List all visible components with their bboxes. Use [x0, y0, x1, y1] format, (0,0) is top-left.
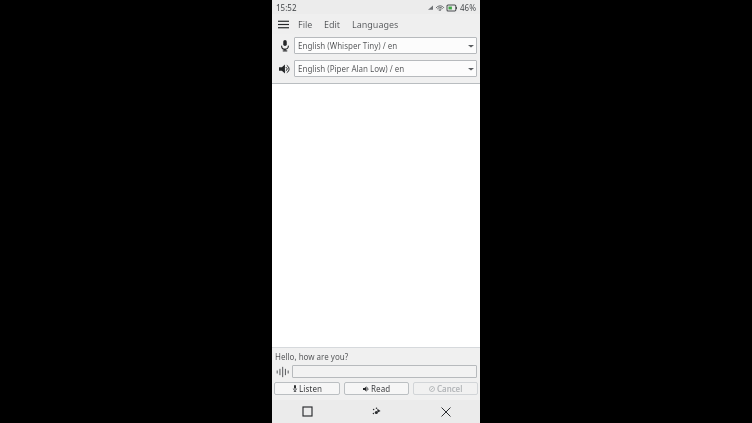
staticText: File [298, 18, 313, 30]
button[interactable]: Edit [320, 16, 345, 32]
button[interactable]: English (Piper Alan Low) / en [294, 60, 477, 77]
button[interactable] [292, 365, 477, 378]
staticText: 15:52 [276, 2, 297, 13]
staticText: Edit [324, 18, 341, 30]
button[interactable]: Recent apps [272, 400, 342, 423]
button[interactable]: Menu [272, 14, 294, 34]
staticText: English (Whisper Tiny) / en [298, 40, 468, 51]
staticText: Read [371, 383, 391, 394]
button[interactable]: Home [342, 400, 411, 423]
staticText: Cancel [437, 383, 463, 394]
staticText: 46% [460, 2, 476, 13]
button[interactable]: Speaker [275, 60, 294, 77]
button[interactable]: Read [344, 382, 409, 395]
button[interactable]: Languages [348, 16, 403, 32]
button[interactable]: English (Whisper Tiny) / en [294, 37, 477, 54]
staticText: Hello, how are you? [275, 351, 349, 362]
staticText: Listen [299, 383, 322, 394]
staticText: English (Piper Alan Low) / en [298, 63, 468, 74]
button[interactable]: Microphone [275, 37, 294, 54]
button[interactable]: File [294, 16, 317, 32]
button[interactable]: Listen [274, 382, 340, 395]
button[interactable]: Back [411, 400, 480, 423]
staticText: Languages [352, 18, 399, 30]
button[interactable]: Cancel [413, 382, 478, 395]
